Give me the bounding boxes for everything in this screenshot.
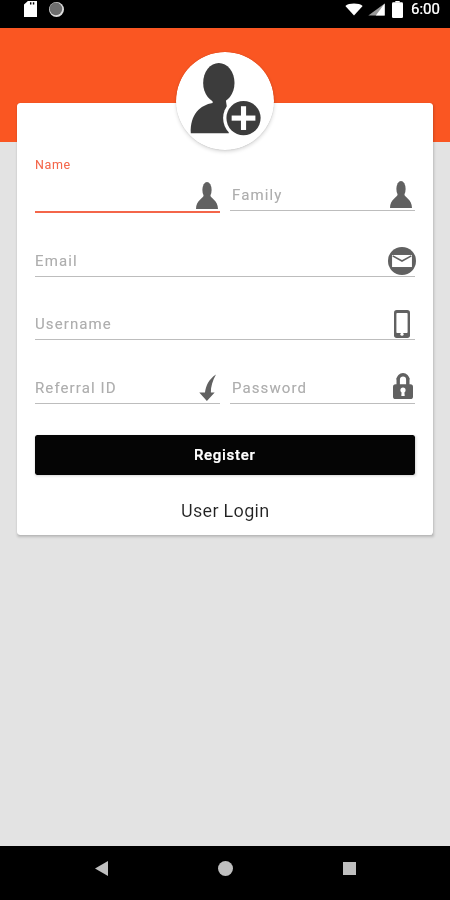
staticText: Family <box>232 186 283 204</box>
staticText: Email <box>35 252 78 270</box>
button[interactable]: Name <box>35 178 220 212</box>
button[interactable]: Email <box>35 244 415 277</box>
staticText: Password <box>232 379 308 397</box>
staticText: Name <box>35 157 71 172</box>
button[interactable]: User Login <box>35 489 415 531</box>
button[interactable]: Home <box>203 846 247 890</box>
button[interactable]: Family <box>230 178 415 211</box>
staticText: Username <box>35 315 112 333</box>
button[interactable]: Register <box>35 435 415 475</box>
staticText: User Login <box>181 500 270 521</box>
button[interactable]: Add profile photo <box>176 52 274 150</box>
button[interactable]: Username <box>35 307 415 340</box>
staticText: Referral ID <box>35 379 117 397</box>
staticText: Register <box>194 446 256 464</box>
button[interactable]: Recents <box>327 846 371 890</box>
staticText: 6:00 <box>411 0 440 18</box>
button[interactable]: Back <box>79 846 123 890</box>
button[interactable]: Referral ID <box>35 371 220 404</box>
button[interactable]: Password <box>230 371 415 404</box>
